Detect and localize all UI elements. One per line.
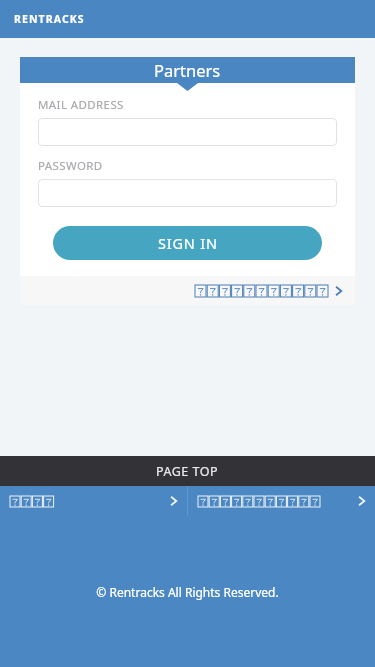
button[interactable]: Contact us bbox=[188, 486, 375, 516]
button[interactable]: Company info bbox=[0, 486, 187, 516]
staticText: Partners bbox=[154, 59, 221, 81]
button[interactable]: RENTRACKS bbox=[14, 12, 85, 26]
staticText: PASSWORD bbox=[38, 158, 103, 174]
staticText: SIGN IN bbox=[158, 233, 218, 253]
button[interactable]: Forgot password bbox=[20, 276, 355, 305]
staticText: © Rentracks All Rights Reserved. bbox=[96, 584, 279, 600]
button[interactable] bbox=[38, 179, 337, 207]
staticText: PAGE TOP bbox=[156, 463, 219, 480]
button[interactable] bbox=[38, 118, 337, 146]
staticText: MAIL ADDRESS bbox=[38, 97, 124, 113]
button[interactable]: SIGN IN bbox=[53, 226, 322, 260]
button[interactable]: PAGE TOP bbox=[0, 456, 375, 486]
